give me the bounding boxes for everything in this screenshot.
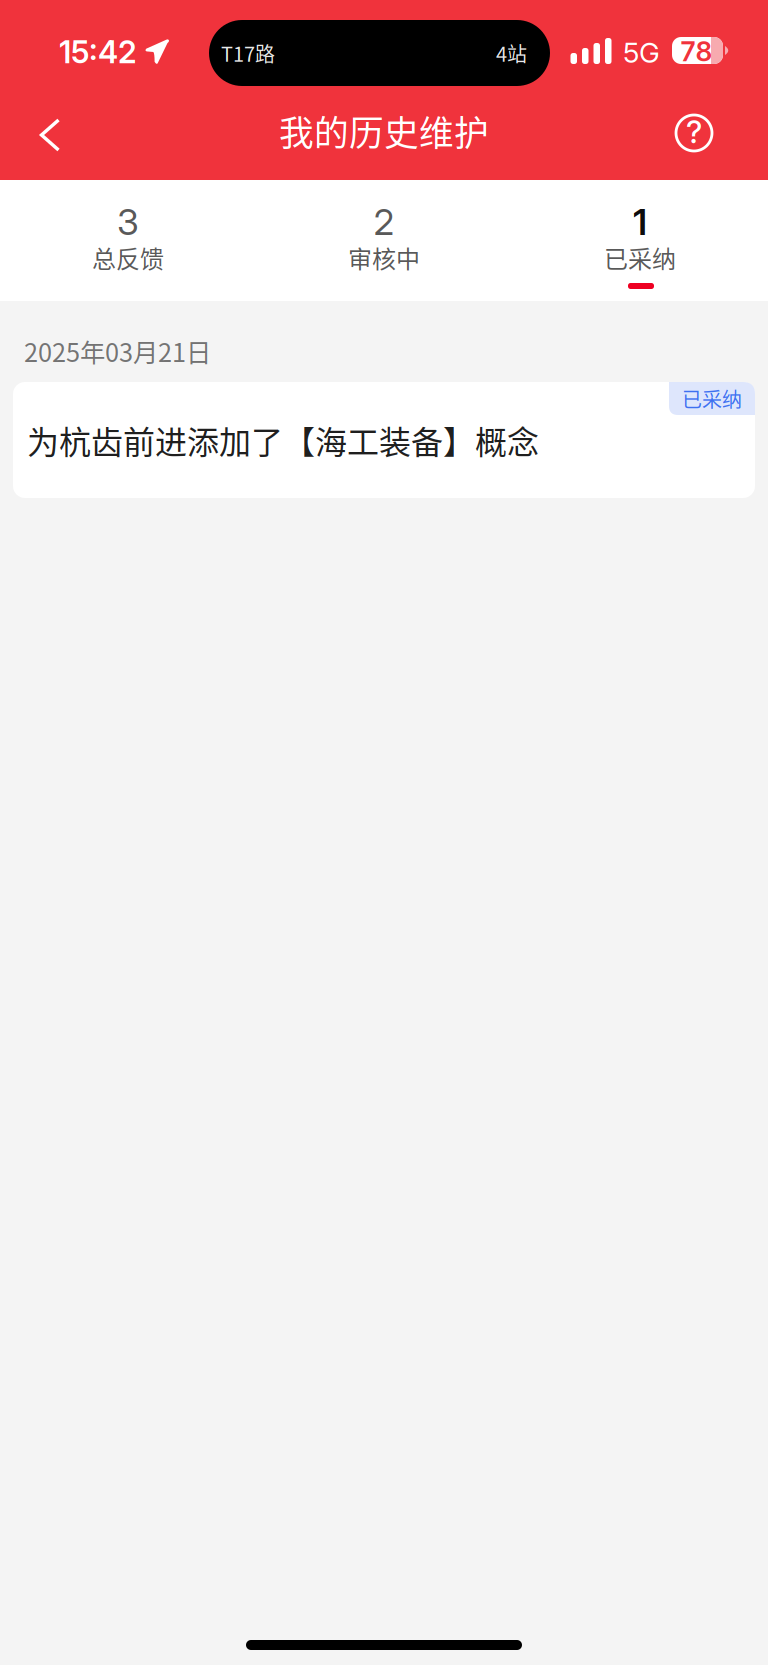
staticText: 已采纳	[604, 240, 676, 275]
button[interactable]: 2	[256, 180, 512, 301]
staticText: 为杭齿前进添加了【海工装备】概念	[27, 417, 539, 463]
staticText: 1	[633, 200, 647, 244]
staticText: 78	[680, 35, 712, 68]
button[interactable]: 1	[512, 180, 768, 301]
staticText: 5G	[623, 36, 660, 69]
staticText: 2025年03月21日	[24, 333, 211, 369]
staticText: T17路	[221, 38, 275, 67]
button[interactable]: Help	[658, 104, 768, 176]
button[interactable]: Back	[0, 104, 88, 176]
button[interactable]: 为杭齿前进添加了【海工装备】概念	[13, 382, 755, 498]
staticText: 已采纳	[682, 384, 742, 413]
staticText: 3	[117, 200, 139, 244]
staticText: 2	[373, 200, 394, 244]
staticText: 我的历史维护	[279, 106, 489, 156]
staticText: 总反馈	[92, 240, 164, 275]
staticText: 4站	[496, 38, 527, 67]
staticText: 15:42	[59, 33, 137, 70]
staticText: ?	[686, 113, 702, 150]
staticText: 审核中	[348, 240, 420, 275]
button[interactable]: 3	[0, 180, 256, 301]
